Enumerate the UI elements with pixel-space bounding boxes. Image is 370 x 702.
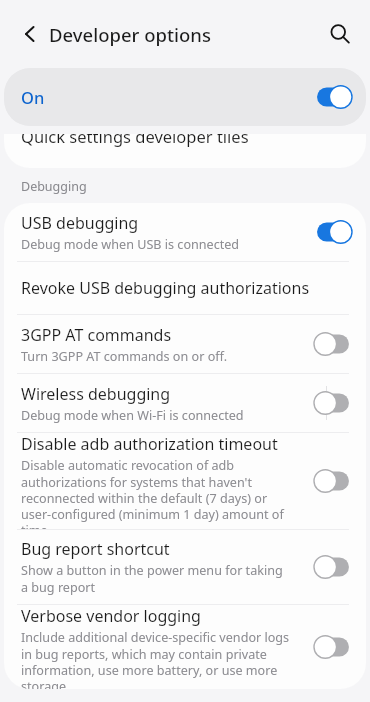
staticText: 3GPP AT commands xyxy=(21,324,172,346)
staticText: Developer options xyxy=(49,22,211,47)
staticText: Debugging xyxy=(21,178,87,195)
staticText: Debug mode when Wi-Fi is connected xyxy=(21,407,244,424)
button[interactable]: On xyxy=(4,68,366,126)
staticText: On xyxy=(21,86,45,108)
staticText: Wireless debugging xyxy=(21,383,171,405)
staticText: Bug report shortcut xyxy=(21,538,170,560)
button[interactable]: USB debugging xyxy=(314,220,352,244)
staticText: Verbose vendor logging xyxy=(21,605,201,627)
button[interactable]: USB debugging xyxy=(4,203,366,261)
staticText: Revoke USB debugging authorizations xyxy=(21,277,310,299)
button[interactable]: 3GPP AT commands xyxy=(314,332,352,356)
staticText: USB debugging xyxy=(21,212,139,234)
staticText: Turn 3GPP AT commands on or off. xyxy=(21,348,228,365)
button[interactable]: Disable adb authorization timeout xyxy=(4,433,366,529)
button[interactable]: Bug report shortcut xyxy=(4,530,366,604)
button[interactable]: Disable adb authorization timeout xyxy=(314,469,352,493)
staticText: Quick settings developer tiles xyxy=(21,134,249,147)
staticText: Disable automatic revocation of adb auth… xyxy=(21,457,293,529)
button[interactable]: Quick settings developer tiles xyxy=(4,134,366,168)
staticText: Show a button in the power menu for taki… xyxy=(21,562,293,596)
button[interactable]: 3GPP AT commands xyxy=(4,315,366,373)
staticText: Disable adb authorization timeout xyxy=(21,433,278,455)
staticText: Include additional device-specific vendo… xyxy=(21,629,293,689)
staticText: Debug mode when USB is connected xyxy=(21,236,240,253)
button[interactable]: Wireless debugging xyxy=(314,391,352,415)
button[interactable]: Back xyxy=(10,14,50,54)
button[interactable]: Search xyxy=(320,14,360,54)
button[interactable]: Verbose vendor logging xyxy=(4,605,366,689)
button[interactable]: Verbose vendor logging xyxy=(314,635,352,659)
button[interactable]: Bug report shortcut xyxy=(314,555,352,579)
button[interactable]: Revoke USB debugging authorizations xyxy=(4,262,366,314)
button[interactable]: Wireless debugging xyxy=(4,374,366,432)
